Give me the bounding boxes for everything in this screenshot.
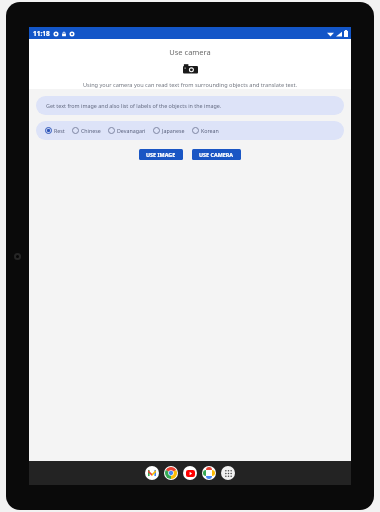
staticText: Use camera [169, 47, 211, 57]
button[interactable]: USE CAMERA [192, 149, 241, 160]
staticText: Using your camera you can read text from… [53, 81, 327, 89]
button[interactable]: Korean [192, 127, 219, 134]
button[interactable]: YouTube [183, 466, 197, 480]
button[interactable]: All apps [221, 466, 235, 480]
staticText: Devanagari [117, 127, 146, 134]
button[interactable]: Japanese [153, 127, 185, 134]
staticText: Korean [201, 127, 219, 134]
button[interactable]: Gmail [145, 466, 159, 480]
staticText: 11:18 [33, 29, 50, 38]
staticText: USE CAMERA [199, 151, 234, 158]
button[interactable]: Chinese [72, 127, 101, 134]
staticText: Rest [54, 127, 65, 134]
staticText: USE IMAGE [146, 151, 176, 158]
staticText: Chinese [81, 127, 101, 134]
button[interactable]: Get text from image and also list of lab… [36, 96, 344, 115]
button[interactable]: USE IMAGE [139, 149, 183, 160]
button[interactable]: Camera [183, 63, 198, 75]
button[interactable]: Chrome [164, 466, 178, 480]
staticText: Get text from image and also list of lab… [46, 102, 222, 109]
button[interactable]: Devanagari [108, 127, 146, 134]
button[interactable]: Rest [45, 127, 65, 134]
button[interactable]: Photos [202, 466, 216, 480]
staticText: Japanese [162, 127, 185, 134]
